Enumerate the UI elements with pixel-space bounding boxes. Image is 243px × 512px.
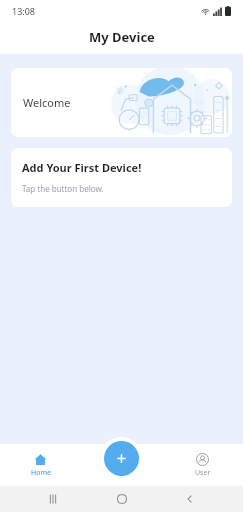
staticText: Add Your First Device!: [22, 160, 142, 175]
button[interactable]: Back: [175, 486, 205, 512]
button[interactable]: Home: [0, 444, 81, 486]
staticText: My Device: [89, 28, 155, 46]
button[interactable]: Recent apps: [38, 486, 68, 512]
button[interactable]: Home: [107, 486, 137, 512]
staticText: Welcome: [23, 95, 71, 110]
staticText: User: [195, 468, 211, 478]
staticText: Tap the button below.: [22, 183, 104, 194]
button[interactable]: Add Your First Device!: [11, 148, 232, 207]
staticText: 13:08: [12, 5, 36, 17]
button[interactable]: Welcome: [11, 68, 232, 137]
button[interactable]: User: [162, 444, 243, 486]
button[interactable]: Add device: [104, 441, 139, 476]
staticText: Home: [31, 468, 51, 478]
